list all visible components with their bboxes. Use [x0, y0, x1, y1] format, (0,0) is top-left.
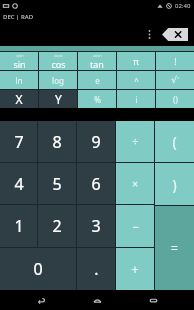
staticText: % [94, 94, 101, 105]
button[interactable]: 0 [0, 248, 76, 290]
staticText: ^ [134, 75, 139, 86]
staticText: 5 [52, 173, 62, 195]
button[interactable]: Y [39, 90, 77, 108]
button[interactable]: () [156, 90, 194, 108]
staticText: 1 [14, 215, 24, 237]
button[interactable]: + [116, 248, 154, 290]
button[interactable]: ^ [117, 71, 155, 89]
button[interactable]: Home [82, 290, 112, 310]
button[interactable]: √ [156, 71, 194, 89]
staticText: 6 [91, 173, 101, 195]
staticText: 9 [91, 131, 101, 153]
button[interactable]: % [78, 90, 116, 108]
button[interactable]: 7 [0, 121, 37, 162]
button[interactable]: 5 [38, 163, 76, 204]
button[interactable]: π [117, 52, 155, 70]
button[interactable]: 8 [38, 121, 76, 162]
staticText: = [171, 240, 178, 256]
staticText: 7 [14, 131, 24, 153]
button[interactable]: = [155, 206, 194, 290]
staticText: π [133, 55, 139, 67]
staticText: √ [171, 75, 177, 85]
staticText: log [52, 75, 64, 86]
button[interactable]: × [116, 163, 154, 204]
staticText: 8 [52, 131, 62, 153]
button[interactable]: e [78, 71, 116, 89]
staticText: 4 [14, 173, 24, 195]
button[interactable]: asin [0, 52, 38, 70]
staticText: ( [172, 132, 177, 151]
button[interactable]: 9 [77, 121, 115, 162]
button[interactable]: . [77, 248, 115, 290]
staticText: () [173, 94, 178, 105]
button[interactable]: 4 [0, 163, 37, 204]
staticText: X [15, 91, 23, 107]
staticText: 3 [91, 215, 101, 237]
button[interactable]: atan [78, 52, 116, 70]
staticText: 2 [52, 215, 62, 237]
button[interactable]: 6 [77, 163, 115, 204]
staticText: × [132, 177, 138, 191]
button[interactable]: log [39, 71, 77, 89]
button[interactable]: 3 [77, 205, 115, 247]
button[interactable]: X [0, 90, 38, 108]
button[interactable]: More options [142, 24, 156, 44]
button[interactable]: 2 [38, 205, 76, 247]
button[interactable]: ) [155, 163, 194, 205]
staticText: ! [174, 55, 177, 67]
staticText: acos [54, 53, 63, 58]
button[interactable]: − [116, 205, 154, 247]
staticText: cos [51, 58, 66, 70]
staticText: 0 [33, 258, 43, 280]
staticText: sin [13, 58, 26, 70]
button[interactable]: 1 [0, 205, 37, 247]
button[interactable]: ! [156, 52, 194, 70]
staticText: . [94, 258, 99, 280]
staticText: DEC | RAD [3, 13, 34, 21]
button[interactable]: Delete [162, 28, 188, 41]
button[interactable]: acos [39, 52, 77, 70]
staticText: ln [15, 75, 23, 86]
staticText: i [135, 94, 138, 105]
staticText: asin [16, 53, 24, 58]
staticText: 02:40 [175, 2, 191, 10]
button[interactable]: ln [0, 71, 38, 89]
staticText: tan [90, 58, 104, 70]
staticText: atan [93, 53, 102, 58]
staticText: x [177, 75, 180, 80]
button[interactable]: Recent apps [138, 290, 168, 310]
staticText: + [131, 260, 139, 278]
button[interactable]: ( [155, 121, 194, 162]
button[interactable]: Back [26, 290, 56, 310]
staticText: e [95, 75, 100, 86]
button[interactable]: ÷ [116, 121, 154, 162]
staticText: ) [172, 175, 177, 194]
staticText: ÷ [132, 134, 139, 149]
staticText: − [132, 219, 139, 234]
button[interactable]: i [117, 90, 155, 108]
staticText: Y [55, 91, 62, 107]
